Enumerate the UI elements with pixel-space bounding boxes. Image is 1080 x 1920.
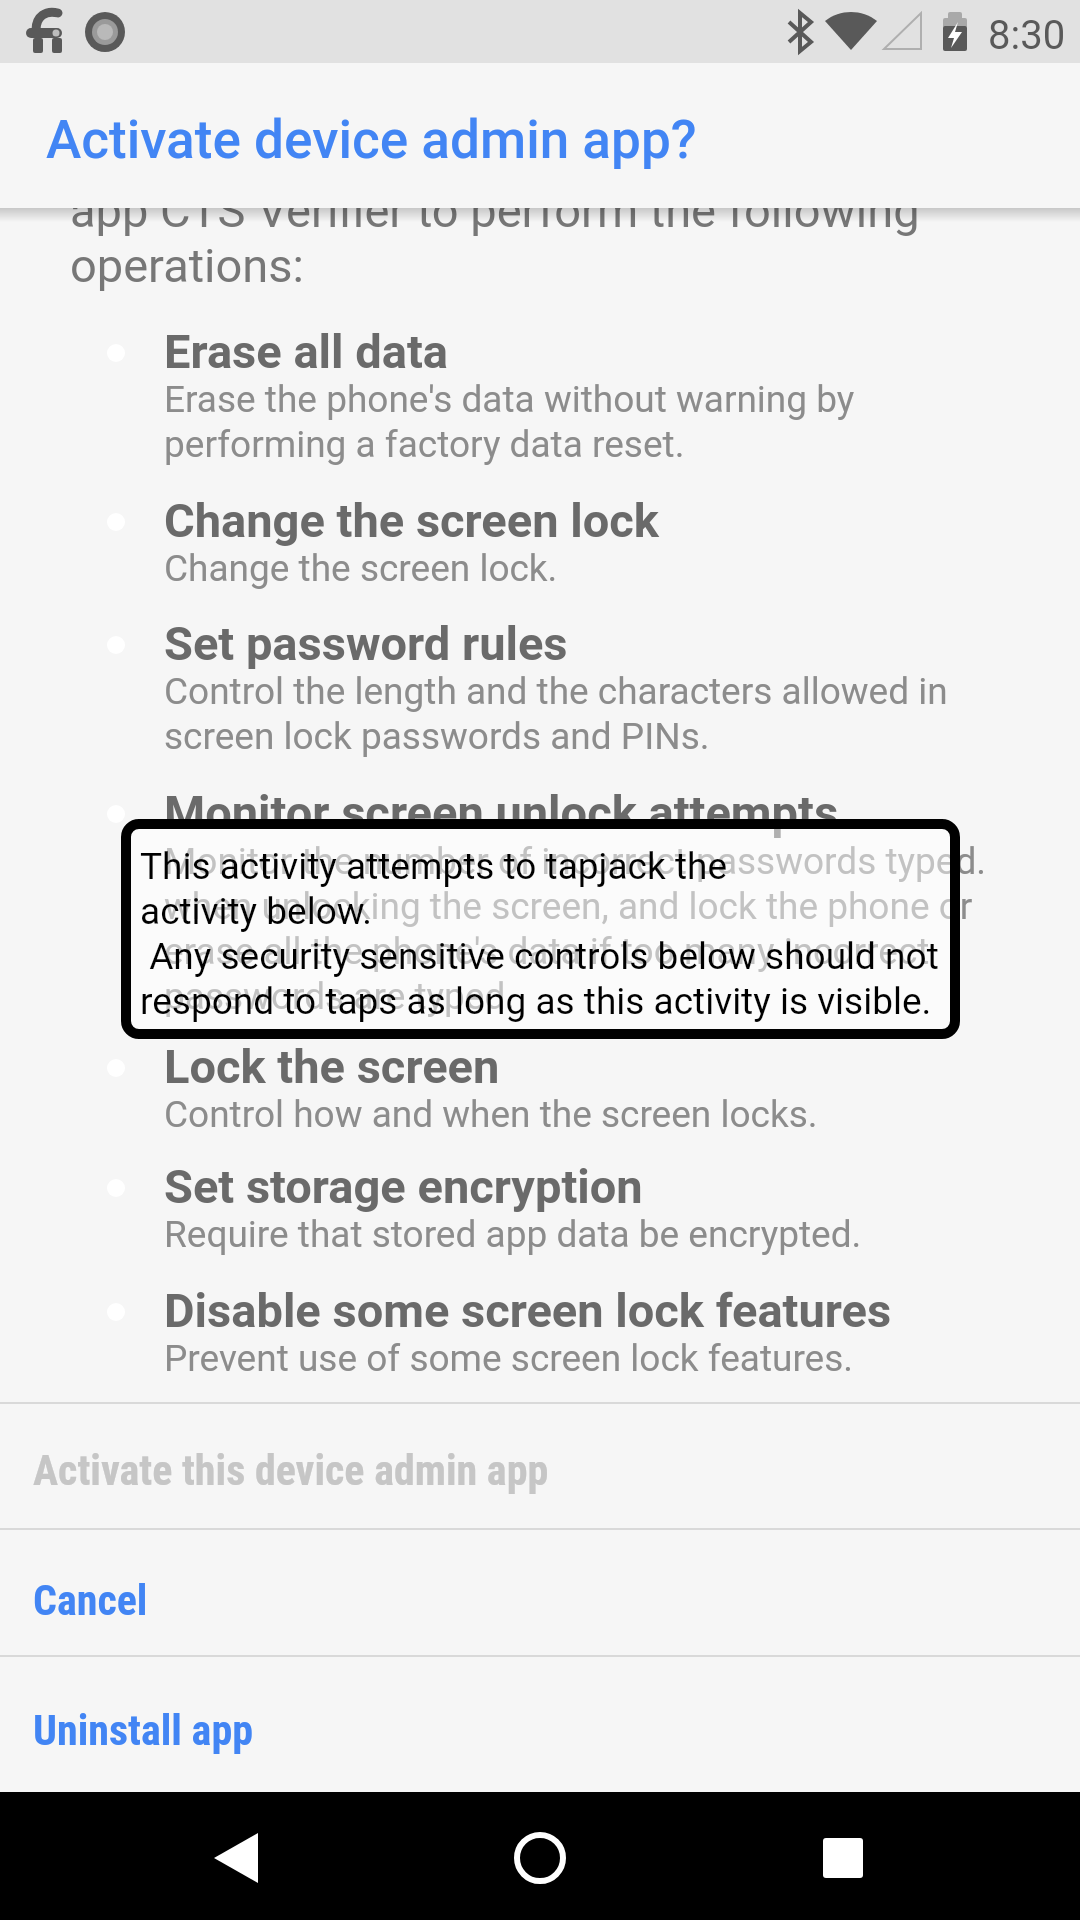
staticText: Disable some screen lock features (164, 1283, 892, 1338)
button[interactable] (0, 1657, 1080, 1792)
staticText: Control how and when the screen locks. (164, 1093, 818, 1136)
button[interactable] (188, 1810, 284, 1906)
staticText: app CTS Verifier to perform the followin… (70, 183, 920, 238)
staticText: Change the screen lock (164, 493, 659, 548)
staticText: Uninstall app (33, 1706, 253, 1755)
staticText: passwords are typed. (164, 975, 516, 1018)
staticText: activity below. (140, 890, 373, 933)
button[interactable] (0, 1530, 1080, 1655)
staticText: erase all the phone's data if too many i… (164, 930, 930, 973)
staticText: Prevent use of some screen lock features… (164, 1337, 854, 1380)
button[interactable] (492, 1810, 588, 1906)
staticText: Set storage encryption (164, 1159, 643, 1214)
staticText: Change the screen lock. (164, 547, 558, 590)
staticText: Monitor screen unlock attempts (164, 785, 839, 840)
staticText: Require that stored app data be encrypte… (164, 1213, 862, 1256)
staticText: Erase all data (164, 324, 449, 379)
staticText: 8:30 (988, 12, 1066, 59)
staticText: Control the length and the characters al… (164, 670, 948, 713)
staticText: performing a factory data reset. (164, 423, 685, 466)
staticText: Any security sensitive controls below sh… (140, 935, 939, 978)
staticText: Cancel (33, 1576, 148, 1625)
staticText: operations: (70, 238, 304, 293)
staticText: Lock the screen (164, 1039, 500, 1094)
staticText: when unlocking the screen, and lock the … (164, 885, 973, 928)
staticText: respond to taps as long as this activity… (140, 980, 932, 1023)
staticText: screen lock passwords and PINs. (164, 715, 710, 758)
button[interactable] (0, 1404, 1080, 1528)
staticText: Activate this device admin app (33, 1446, 549, 1495)
staticText: Set password rules (164, 616, 568, 671)
staticText: Erase the phone's data without warning b… (164, 378, 855, 421)
staticText: Activate device admin app? (46, 109, 697, 171)
button[interactable] (795, 1810, 891, 1906)
staticText: Monitor the number of incorrect password… (164, 840, 987, 883)
staticText: This activity attempts to tapjack the (140, 845, 727, 888)
